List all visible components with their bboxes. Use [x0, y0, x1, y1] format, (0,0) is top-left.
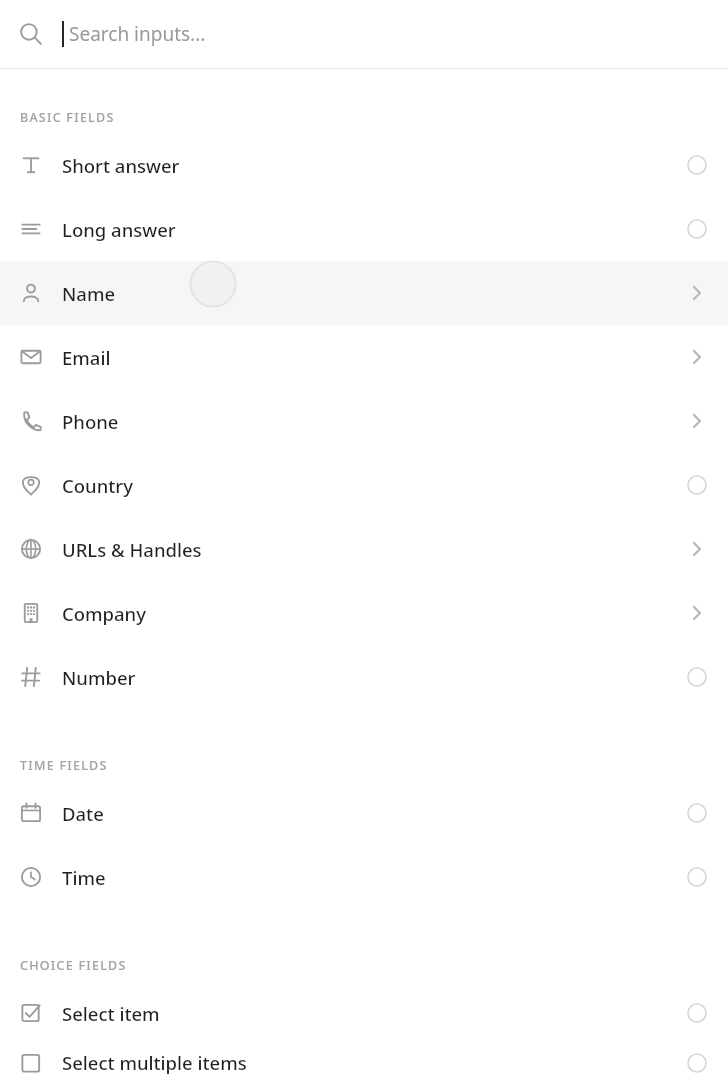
staticText: Name	[62, 281, 666, 306]
staticText: Select item	[62, 1001, 666, 1026]
staticText: URLs & Handles	[62, 537, 666, 562]
staticText: Phone	[62, 409, 666, 434]
staticText: Number	[62, 665, 666, 690]
button[interactable]: Email	[0, 325, 728, 389]
staticText: Country	[62, 473, 666, 498]
other: Search	[0, 0, 62, 68]
button[interactable]: Time	[0, 845, 728, 909]
button[interactable]: Company	[0, 581, 728, 645]
staticText: CHOICE FIELDS	[20, 957, 127, 974]
staticText: Company	[62, 601, 666, 626]
staticText: Email	[62, 345, 666, 370]
button[interactable]: Phone	[0, 389, 728, 453]
button[interactable]: Select item	[0, 981, 728, 1045]
button[interactable]: Search	[0, 0, 728, 68]
button[interactable]: Number	[0, 645, 728, 709]
staticText: BASIC FIELDS	[20, 109, 115, 126]
button[interactable]: Date	[0, 781, 728, 845]
staticText: Long answer	[62, 217, 666, 242]
staticText: Time	[62, 865, 666, 890]
button[interactable]: Long answer	[0, 197, 728, 261]
button[interactable]: Country	[0, 453, 728, 517]
button[interactable]: URLs & Handles	[0, 517, 728, 581]
staticText: Date	[62, 801, 666, 826]
button[interactable]: Select multiple items	[0, 1045, 728, 1080]
staticText: Short answer	[62, 153, 666, 178]
button[interactable]: Name	[0, 261, 728, 325]
staticText: Select multiple items	[62, 1050, 666, 1075]
button[interactable]: Short answer	[0, 133, 728, 197]
staticText: Search inputs...	[69, 21, 206, 47]
staticText: TIME FIELDS	[20, 757, 108, 774]
